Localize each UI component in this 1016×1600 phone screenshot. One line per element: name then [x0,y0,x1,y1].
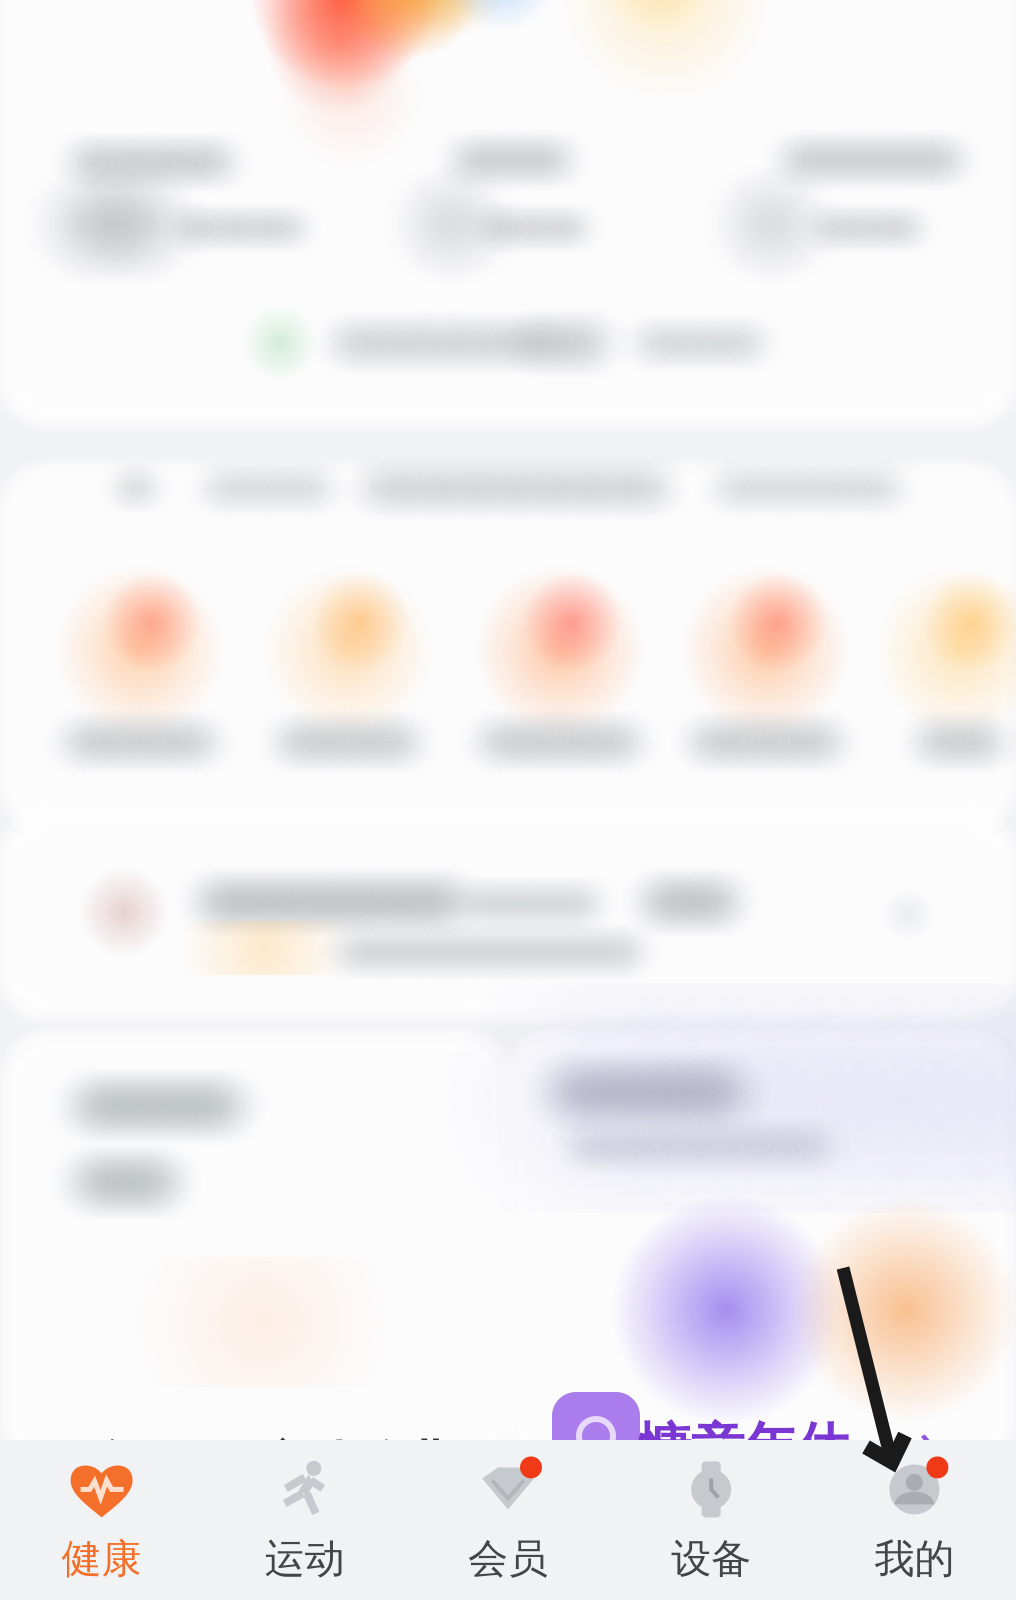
button[interactable]: 我的 [813,1430,1016,1600]
staticText: › [918,1399,937,1481]
button[interactable]: 健康 [0,1430,203,1600]
staticText: 慷意年休 [638,1415,850,1481]
staticText: 设备 [671,1534,751,1583]
staticText: 2023年10月 文体路北 [0,1430,454,1494]
staticText: 运动 [265,1534,345,1583]
button[interactable]: 运动 [203,1430,406,1600]
staticText: 健康 [62,1534,142,1583]
staticText: 我的 [874,1534,954,1583]
button[interactable]: 会员 [406,1430,610,1600]
staticText: 会员 [468,1534,548,1583]
button[interactable]: 设备 [610,1430,813,1600]
